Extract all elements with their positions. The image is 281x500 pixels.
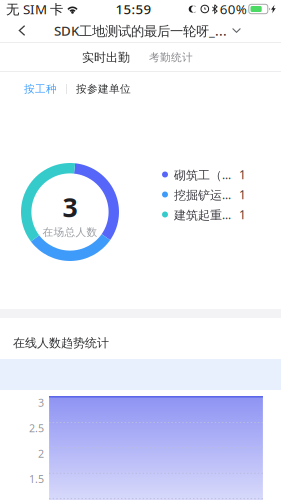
staticText: 按参建单位 — [76, 82, 131, 95]
staticText: 1 — [239, 166, 246, 182]
staticText: 1 — [239, 186, 246, 202]
button[interactable]: 挖掘铲运和... — [162, 184, 246, 204]
staticText: 1 — [239, 206, 246, 222]
button[interactable]: 按参建单位 — [67, 72, 131, 106]
staticText: 2.5 — [29, 421, 44, 435]
staticText: 按工种 — [24, 82, 57, 95]
staticText: 1.5 — [29, 472, 44, 486]
button[interactable]: 砌筑工（建... — [162, 164, 246, 184]
button[interactable]: 实时出勤 — [82, 43, 130, 72]
staticText: 在线人数趋势统计 — [13, 336, 109, 350]
button[interactable]: 按工种 — [24, 72, 66, 106]
staticText: 砌筑工（建... — [174, 166, 231, 182]
staticText: 在场总人数 — [42, 226, 97, 239]
staticText: SDK工地测试的最后一轮呀_... — [54, 22, 227, 39]
button[interactable]: SDK工地测试的最后一轮呀_... — [50, 18, 245, 43]
staticText: 实时出勤 — [82, 50, 130, 65]
button[interactable]: 考勤统计 — [149, 43, 193, 72]
staticText: 15:59 — [115, 0, 151, 18]
staticText: 挖掘铲运和... — [174, 186, 231, 202]
button[interactable]: 返回 — [0, 18, 44, 43]
staticText: 2 — [38, 446, 44, 461]
staticText: 3 — [38, 396, 44, 410]
staticText: 建筑起重机... — [174, 206, 231, 222]
staticText: 3 — [62, 189, 77, 225]
button[interactable]: 建筑起重机... — [162, 204, 246, 224]
staticText: 无 SIM 卡 — [6, 0, 63, 18]
staticText: 60% — [220, 0, 247, 18]
staticText: 考勤统计 — [149, 51, 193, 64]
